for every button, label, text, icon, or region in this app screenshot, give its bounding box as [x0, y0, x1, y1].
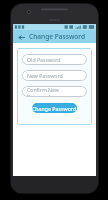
button[interactable]: Change Password [32, 103, 77, 113]
staticText: Change Password [32, 105, 77, 112]
staticText: Confirm New Password [27, 86, 83, 97]
staticText: New Password [27, 72, 63, 79]
button[interactable]: Old Password [22, 54, 87, 65]
button[interactable]: Back [16, 32, 26, 42]
staticText: Change Password [29, 32, 86, 41]
button[interactable]: New Password [22, 70, 87, 81]
button[interactable]: Confirm New Password [22, 86, 87, 97]
staticText: Old Password [27, 56, 61, 63]
